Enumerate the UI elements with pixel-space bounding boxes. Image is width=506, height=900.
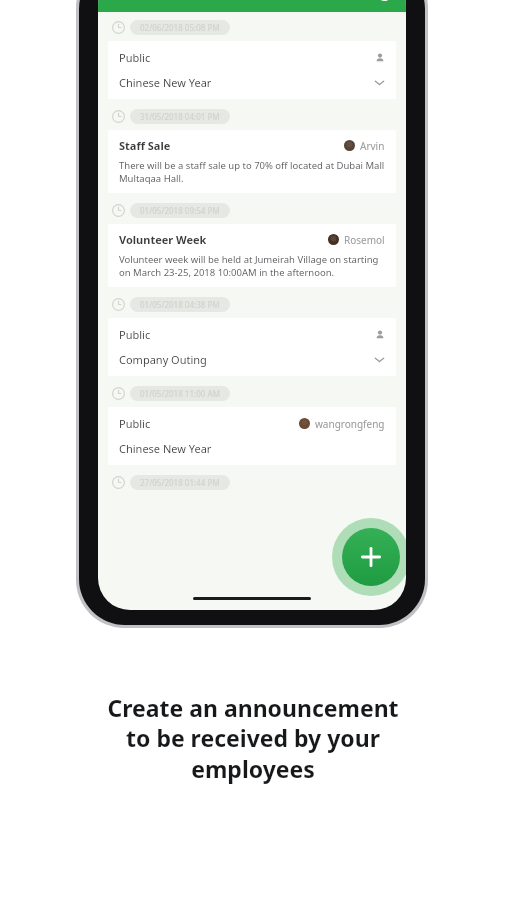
staticText: 01/05/2018 11:00 AM: [140, 388, 220, 399]
staticText: Chinese New Year: [119, 441, 385, 456]
staticText: Public: [119, 327, 375, 342]
staticText: Create an announcement to be received by…: [0, 692, 506, 785]
staticText: Arvin: [360, 139, 385, 153]
staticText: 31/05/2018 04:01 PM: [140, 111, 220, 122]
staticText: 01/05/2018 04:38 PM: [140, 299, 220, 310]
staticText: 01/05/2018 09:54 PM: [140, 205, 220, 216]
staticText: There will be a staff sale up to 70% off…: [119, 159, 385, 185]
staticText: Rosemol: [344, 233, 385, 247]
button[interactable]: Public: [108, 318, 396, 376]
staticText: Public: [119, 50, 375, 65]
staticText: wangrongfeng: [315, 417, 385, 431]
staticText: Chinese New Year: [119, 75, 374, 90]
staticText: Public: [119, 416, 299, 431]
staticText: 27/05/2018 01:44 PM: [140, 477, 220, 488]
button[interactable]: Create announcement: [332, 518, 406, 596]
button[interactable]: Staff Sale: [108, 130, 396, 193]
staticText: Volunteer week will be held at Jumeirah …: [119, 253, 385, 279]
button[interactable]: Public: [108, 407, 396, 465]
staticText: 02/06/2018 05:08 PM: [140, 22, 220, 33]
staticText: Company Outing: [119, 352, 374, 367]
staticText: Staff Sale: [119, 138, 344, 153]
button[interactable]: Public: [108, 41, 396, 99]
button[interactable]: Refresh: [370, 0, 398, 7]
button[interactable]: Volunteer Week: [108, 224, 396, 287]
staticText: Volunteer Week: [119, 232, 328, 247]
